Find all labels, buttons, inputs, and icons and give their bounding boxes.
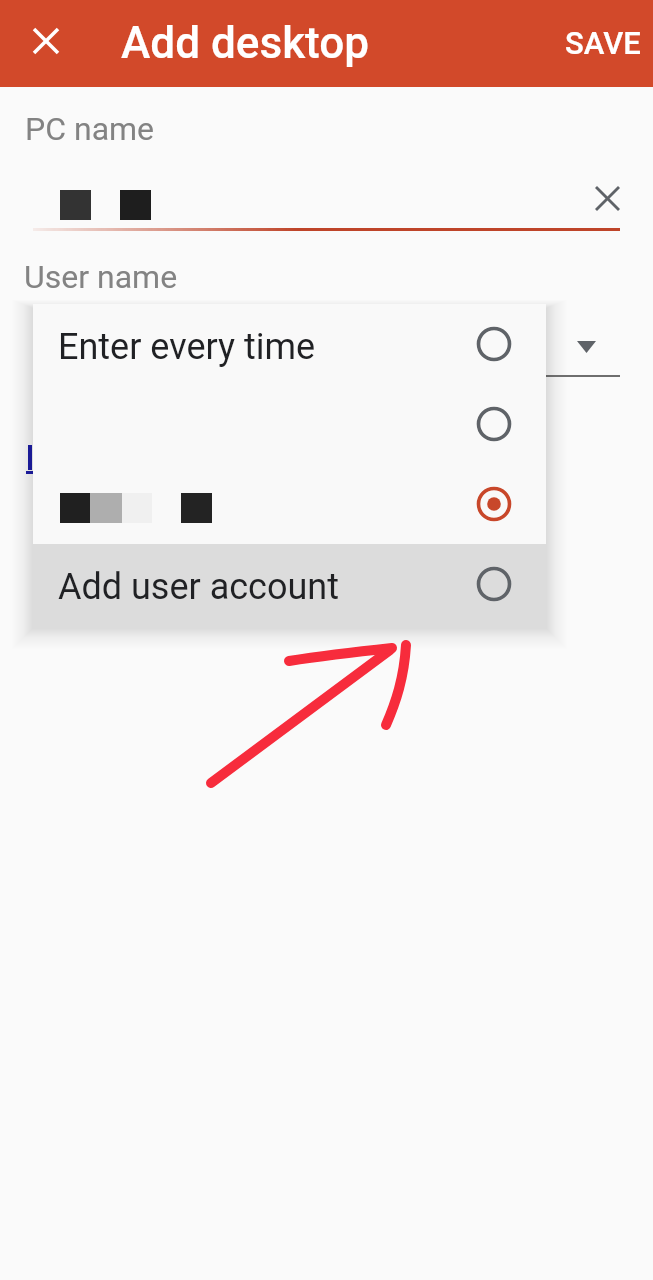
staticText: Enter every time — [58, 326, 316, 368]
staticText: User name — [24, 258, 178, 296]
staticText: SAVE — [565, 25, 641, 61]
staticText: Add desktop — [121, 17, 369, 69]
staticText: PC name — [25, 110, 155, 148]
button[interactable] — [33, 464, 546, 544]
staticText: Add user account — [58, 566, 339, 608]
button[interactable]: SAVE — [544, 13, 646, 73]
button[interactable]: Add user account — [33, 544, 546, 624]
button[interactable] — [33, 384, 546, 464]
button[interactable]: Close — [22, 17, 70, 65]
button[interactable]: Clear text — [583, 174, 631, 222]
button[interactable]: Enter every time — [33, 304, 546, 384]
